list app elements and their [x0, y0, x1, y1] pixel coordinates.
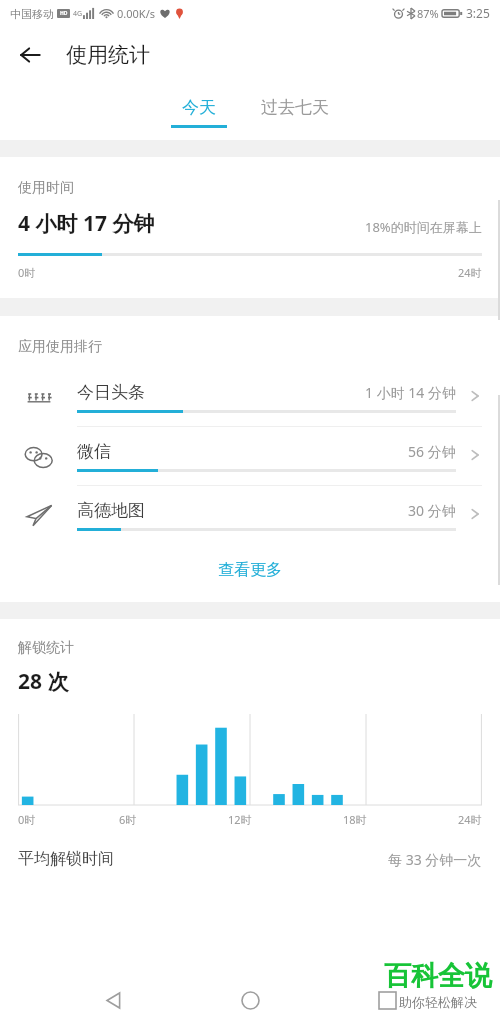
staticText: 1 小时 14 分钟 [365, 383, 456, 402]
button[interactable]: 今日头条 [0, 368, 500, 426]
staticText: 56 分钟 [408, 442, 456, 461]
button[interactable]: 返回 [8, 33, 52, 77]
staticText: 平均解锁时间 [18, 849, 114, 869]
staticText: 高德地图 [77, 500, 145, 521]
staticText: 助你轻松解决 [399, 994, 477, 1010]
staticText: 百科全说 [384, 959, 492, 993]
staticText: 使用统计 [66, 42, 150, 68]
button[interactable]: 查看更多 [0, 544, 500, 596]
staticText: 28 次 [18, 667, 69, 696]
button[interactable]: 过去七天 [255, 97, 335, 128]
staticText: 18时 [343, 812, 367, 827]
staticText: 0时 [18, 812, 36, 827]
staticText: 6时 [119, 812, 137, 827]
staticText: 每 33 分钟一次 [388, 850, 482, 869]
staticText: 今日头条 [77, 382, 145, 403]
button[interactable]: 今天 [165, 97, 233, 128]
staticText: 0时 [18, 265, 36, 280]
staticText: 0.00K/s [117, 6, 155, 21]
button[interactable]: 返回 [89, 976, 137, 1024]
staticText: 4G [73, 9, 83, 19]
staticText: 12时 [228, 812, 252, 827]
button[interactable]: 高德地图 [0, 486, 500, 544]
staticText: HD [60, 10, 68, 17]
staticText: 过去七天 [261, 97, 329, 118]
staticText: 微信 [77, 441, 111, 462]
button[interactable]: 微信 [0, 427, 500, 485]
staticText: 30 分钟 [408, 501, 456, 520]
button[interactable]: 最近任务 [363, 976, 411, 1024]
staticText: 18%的时间在屏幕上 [365, 218, 482, 236]
staticText: 24时 [458, 812, 482, 827]
staticText: 今天 [182, 97, 216, 118]
staticText: 使用时间 [18, 179, 74, 197]
staticText: 查看更多 [218, 560, 282, 580]
staticText: 4 小时 17 分钟 [18, 209, 155, 238]
staticText: 24时 [458, 265, 482, 280]
staticText: 应用使用排行 [18, 338, 102, 356]
staticText: 3:25 [466, 5, 490, 21]
staticText: 87% [417, 6, 439, 21]
button[interactable]: 主页 [226, 976, 274, 1024]
staticText: 解锁统计 [18, 639, 74, 657]
staticText: 中国移动 [10, 7, 54, 21]
